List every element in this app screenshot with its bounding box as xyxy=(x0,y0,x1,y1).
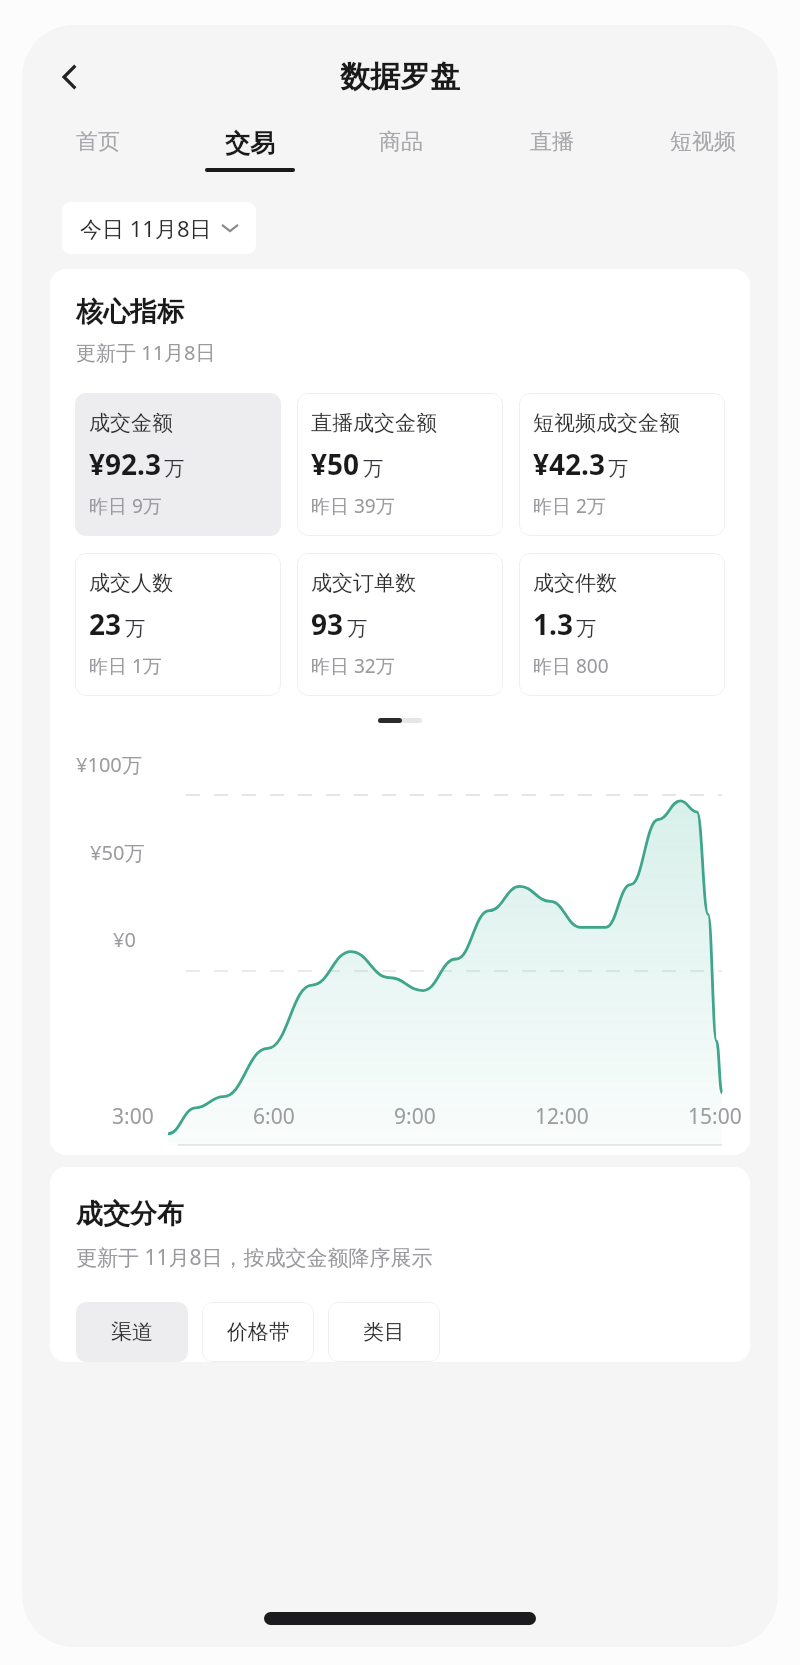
staticText: 首页 xyxy=(76,128,120,156)
staticText: 15:00 xyxy=(688,1102,742,1131)
staticText: 昨日 2万 xyxy=(533,493,606,519)
staticText: 核心指标 xyxy=(76,295,184,329)
staticText: 万 xyxy=(347,616,367,641)
button[interactable]: 渠道 xyxy=(76,1302,188,1362)
button[interactable]: 今日 11月8日 xyxy=(62,202,256,254)
staticText: 万 xyxy=(125,616,145,641)
staticText: 昨日 9万 xyxy=(89,493,162,519)
staticText: 更新于 11月8日，按成交金额降序展示 xyxy=(76,1243,433,1272)
staticText: 直播成交金额 xyxy=(311,410,437,436)
button[interactable]: 成交件数 xyxy=(519,553,725,696)
staticText: 6:00 xyxy=(253,1102,295,1131)
staticText: 3:00 xyxy=(112,1102,154,1131)
staticText: 交易 xyxy=(225,128,275,159)
button[interactable]: 交易 xyxy=(174,128,325,190)
staticText: 直播 xyxy=(530,128,574,156)
staticText: 数据罗盘 xyxy=(340,58,460,96)
button[interactable]: 直播成交金额 xyxy=(297,393,503,536)
staticText: 昨日 800 xyxy=(533,653,609,679)
staticText: ¥50万 xyxy=(90,839,145,866)
staticText: 成交金额 xyxy=(89,410,173,436)
staticText: ¥50 xyxy=(311,445,360,483)
staticText: 93 xyxy=(311,605,344,643)
staticText: 短视频成交金额 xyxy=(533,410,680,436)
staticText: ¥0 xyxy=(113,926,136,953)
staticText: 成交件数 xyxy=(533,570,617,596)
staticText: 类目 xyxy=(363,1319,405,1345)
staticText: 价格带 xyxy=(227,1319,290,1345)
button[interactable]: 短视频 xyxy=(627,128,778,190)
button[interactable]: 直播 xyxy=(476,128,627,190)
staticText: 成交人数 xyxy=(89,570,173,596)
staticText: 今日 11月8日 xyxy=(80,213,212,243)
button[interactable]: 成交订单数 xyxy=(297,553,503,696)
staticText: 成交分布 xyxy=(76,1197,184,1231)
button[interactable]: 首页 xyxy=(22,128,174,190)
button[interactable]: 短视频成交金额 xyxy=(519,393,725,536)
staticText: 商品 xyxy=(379,128,423,156)
staticText: 12:00 xyxy=(535,1102,589,1131)
staticText: 短视频 xyxy=(670,128,736,156)
button[interactable]: 成交金额 xyxy=(75,393,281,536)
button[interactable]: 类目 xyxy=(328,1302,440,1362)
button[interactable]: 成交人数 xyxy=(75,553,281,696)
staticText: ¥42.3 xyxy=(533,445,605,483)
staticText: 万 xyxy=(576,616,596,641)
staticText: 23 xyxy=(89,605,122,643)
staticText: 昨日 32万 xyxy=(311,653,395,679)
staticText: 更新于 11月8日 xyxy=(76,339,216,366)
staticText: ¥100万 xyxy=(76,751,142,778)
staticText: 渠道 xyxy=(111,1319,153,1345)
staticText: 万 xyxy=(164,456,184,481)
staticText: 万 xyxy=(363,456,383,481)
staticText: 昨日 39万 xyxy=(311,493,395,519)
staticText: ¥92.3 xyxy=(89,445,161,483)
staticText: 昨日 1万 xyxy=(89,653,162,679)
button[interactable]: 商品 xyxy=(325,128,476,190)
staticText: 1.3 xyxy=(533,605,573,643)
button[interactable]: 价格带 xyxy=(202,1302,314,1362)
staticText: 9:00 xyxy=(394,1102,436,1131)
button[interactable]: Back xyxy=(42,49,98,105)
staticText: 万 xyxy=(608,456,628,481)
staticText: 成交订单数 xyxy=(311,570,416,596)
